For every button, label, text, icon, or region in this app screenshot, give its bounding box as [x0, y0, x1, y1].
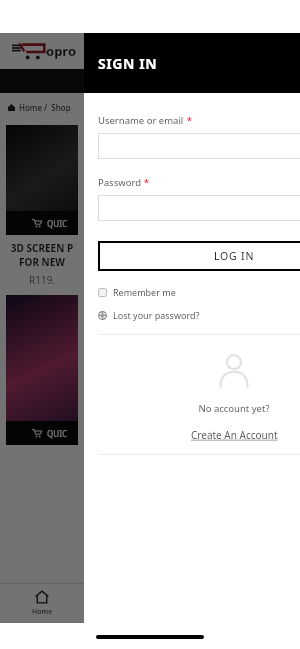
staticText: Lost your password? [113, 309, 200, 321]
staticText: QUIC [47, 218, 68, 229]
staticText: 3D SCREEN P [6, 241, 78, 255]
staticText: R119. [6, 273, 78, 287]
button[interactable]: Create An Account [189, 426, 280, 444]
button[interactable]: Lost your password? [98, 307, 200, 323]
staticText: LOG IN [214, 249, 255, 263]
staticText: QUIC [47, 428, 68, 439]
staticText: Password [98, 176, 141, 189]
staticText: Username or email [98, 114, 184, 127]
button[interactable]: LOG IN [98, 241, 300, 271]
staticText: FOR NEW [6, 255, 78, 269]
staticText: * [187, 114, 192, 126]
staticText: Home [32, 607, 53, 617]
staticText: Remember me [113, 286, 176, 298]
button[interactable] [98, 195, 300, 221]
staticText: * [144, 176, 149, 188]
button[interactable]: Remember me [98, 284, 176, 300]
staticText: No account yet? [98, 402, 300, 415]
staticText: opro [46, 42, 77, 60]
button[interactable] [98, 133, 300, 159]
staticText: Home / Shop [19, 102, 71, 113]
staticText: SIGN IN [98, 54, 158, 73]
